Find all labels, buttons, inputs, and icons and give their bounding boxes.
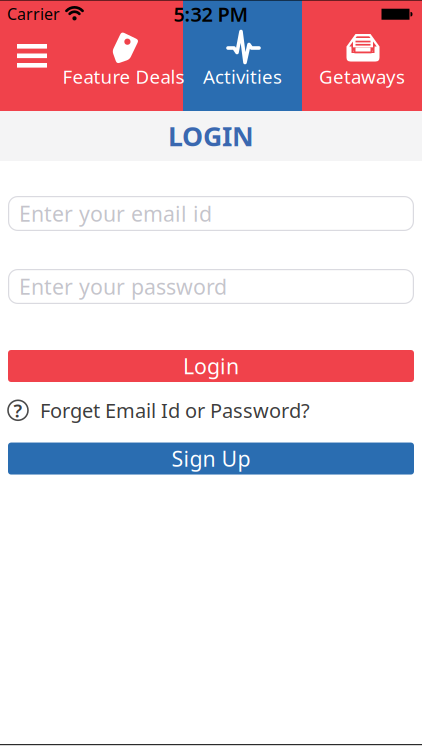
- staticText: Activities: [203, 64, 282, 89]
- button[interactable]: Activities: [183, 25, 302, 110]
- staticText: Sign Up: [171, 444, 250, 473]
- staticText: Forget Email Id or Password?: [40, 397, 310, 424]
- staticText: Enter your email id: [19, 199, 212, 228]
- button[interactable]: Login: [8, 350, 414, 382]
- staticText: Enter your password: [19, 272, 227, 301]
- staticText: Getaways: [319, 64, 405, 89]
- staticText: LOGIN: [168, 118, 254, 154]
- staticText: Carrier: [7, 3, 60, 24]
- staticText: Login: [183, 352, 239, 380]
- button[interactable]: Enter your password: [8, 269, 414, 304]
- button[interactable]: Feature Deals: [64, 25, 183, 110]
- button[interactable]: [0, 25, 64, 106]
- button[interactable]: Sign Up: [8, 443, 414, 475]
- button[interactable]: Enter your email id: [8, 196, 414, 231]
- staticText: 5:32 PM: [173, 1, 248, 27]
- staticText: Feature Deals: [62, 64, 184, 89]
- button[interactable]: Getaways: [302, 25, 422, 110]
- button[interactable]: ?: [0, 397, 422, 424]
- staticText: ?: [13, 398, 22, 423]
